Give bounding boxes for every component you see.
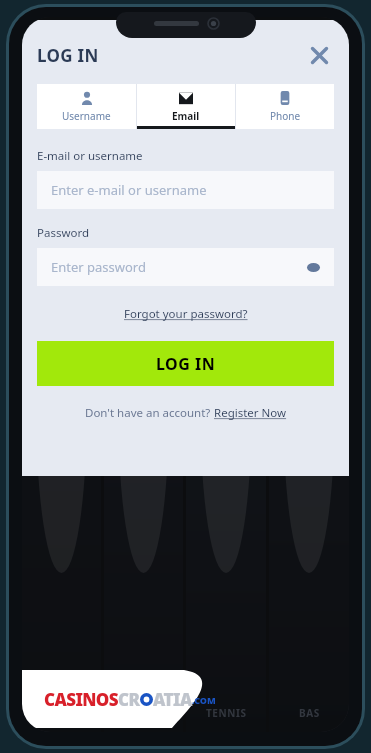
button[interactable]: TENNIS [186,143,266,732]
staticText: LOG IN [156,353,216,375]
staticText: LOG IN [83,82,126,98]
staticText: SPORTS [53,120,95,135]
staticText: Email [172,109,200,123]
button[interactable]: REGISTER [187,76,346,104]
button[interactable]: Enter e-mail or username [37,171,334,209]
staticText: REGISTER [238,82,295,98]
staticText: .COM [192,694,216,706]
staticText: Phone [270,109,301,123]
button[interactable]: Enter password [37,248,334,286]
staticText: LIVE BETTING [148,120,223,135]
button[interactable]: LOG IN [37,341,334,386]
button[interactable] [104,143,183,732]
button[interactable]: LOG IN [25,76,183,104]
staticText: BAS [299,706,320,720]
staticText: E-mail or username [37,148,143,164]
button[interactable]: CASINO [246,113,349,141]
button[interactable]: BAS [269,143,349,732]
button[interactable]: Forgot your password? [120,304,252,324]
staticText: Enter e-mail or username [51,181,207,199]
staticText: Don't have an account? [85,405,214,421]
staticText: Register Now [214,405,287,421]
staticText: LOG IN [37,44,99,67]
button[interactable]: Show password [304,258,322,276]
staticText: Password [37,225,90,241]
button[interactable]: SPORTS [22,113,125,141]
button[interactable]: Close [304,40,334,70]
staticText: ATIA [153,688,192,711]
button[interactable]: Don't have an account? [85,403,287,423]
staticText: Forgot your password? [124,306,248,322]
button[interactable]: LIVE BETTING [126,113,245,141]
button[interactable] [22,143,101,732]
button[interactable]: Username [37,84,136,129]
button[interactable]: Menu [32,35,56,59]
staticText: CR [118,688,140,711]
staticText: CASINOS [44,688,118,711]
staticText: CASINO [276,120,319,135]
staticText: Enter password [51,258,146,276]
button[interactable]: Phone [236,84,334,129]
staticText: Username [62,109,111,123]
button[interactable]: Email [137,84,235,129]
staticText: TENNIS [206,706,247,720]
